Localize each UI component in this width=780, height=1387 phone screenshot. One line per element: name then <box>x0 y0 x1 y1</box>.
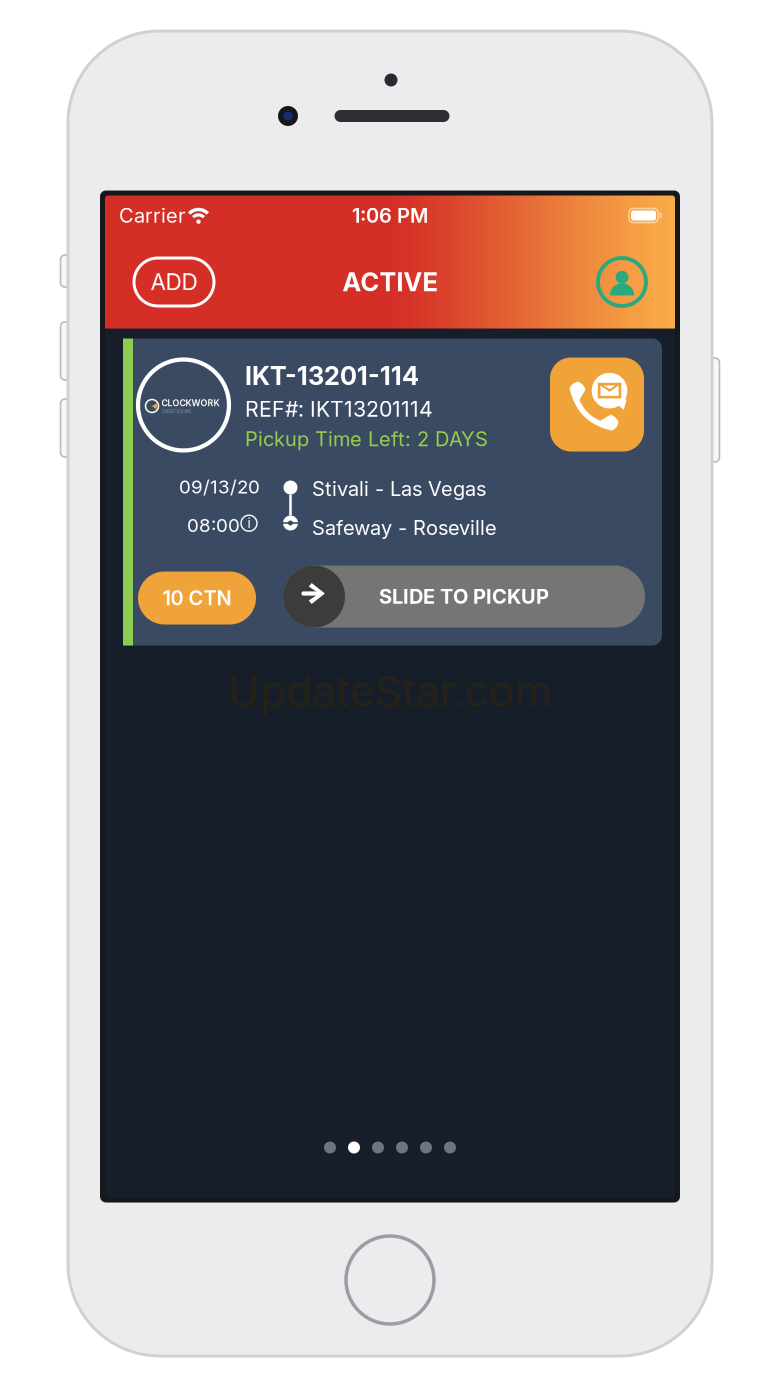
staticText: IKT-13201-114 <box>245 360 419 391</box>
staticText: ADD <box>150 268 197 296</box>
staticText: 08:00 <box>187 514 240 536</box>
button[interactable]: Profile <box>598 258 646 306</box>
staticText: Stivali - Las Vegas <box>312 476 486 501</box>
staticText: Safeway - Roseville <box>312 516 497 540</box>
staticText: CLOCKWORK <box>161 398 219 408</box>
staticText: LOGISTICS INC <box>161 409 191 414</box>
staticText: i <box>247 515 250 531</box>
staticText: REF#: IKT13201114 <box>245 396 433 422</box>
staticText: ACTIVE <box>342 267 437 297</box>
staticText: Pickup Time Left: 2 DAYS <box>245 427 488 451</box>
staticText: UpdateStar.com <box>228 665 552 717</box>
button[interactable]: Call or message <box>550 357 644 451</box>
button[interactable]: ADD <box>134 258 214 306</box>
staticText: SLIDE TO PICKUP <box>379 584 549 609</box>
staticText: 1:06 PM <box>352 203 428 228</box>
staticText: 09/13/20 <box>179 475 260 498</box>
button[interactable]: SLIDE TO PICKUP <box>283 565 645 627</box>
staticText: 10 CTN <box>162 586 231 610</box>
staticText: Carrier <box>119 203 185 228</box>
